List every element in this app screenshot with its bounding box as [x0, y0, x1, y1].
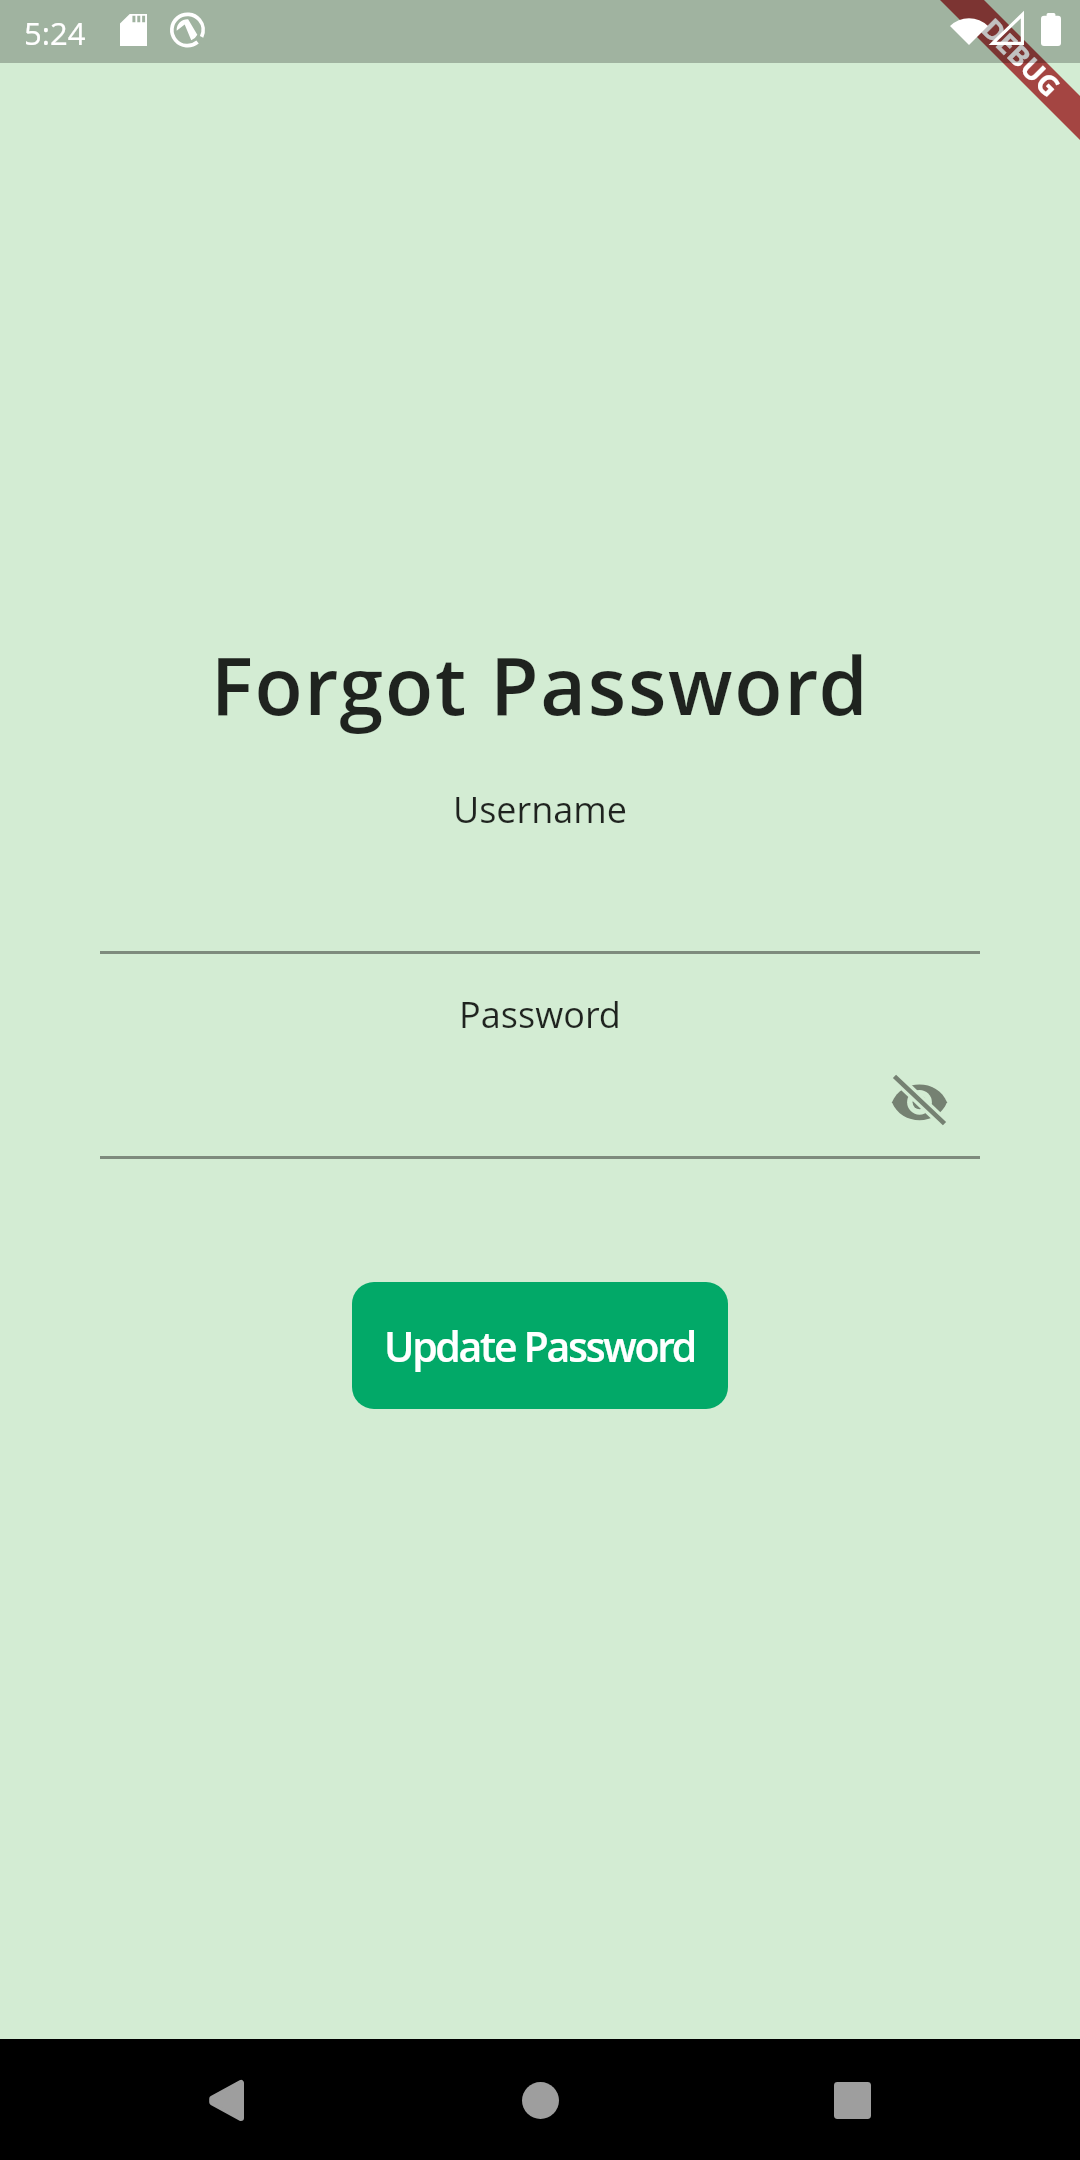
staticText: 5:24: [24, 12, 86, 54]
staticText: DEBUG: [974, 9, 1069, 105]
staticText: Username: [0, 785, 1080, 834]
button[interactable]: Recents: [797, 2045, 907, 2155]
button[interactable]: Show password: [882, 1063, 956, 1137]
button[interactable]: Back: [171, 2045, 281, 2155]
staticText: Update Password: [384, 1318, 696, 1374]
staticText: Password: [0, 990, 1080, 1039]
button[interactable]: Update Password: [352, 1282, 728, 1409]
staticText: Forgot Password: [0, 631, 1080, 739]
button[interactable]: Home: [485, 2045, 595, 2155]
